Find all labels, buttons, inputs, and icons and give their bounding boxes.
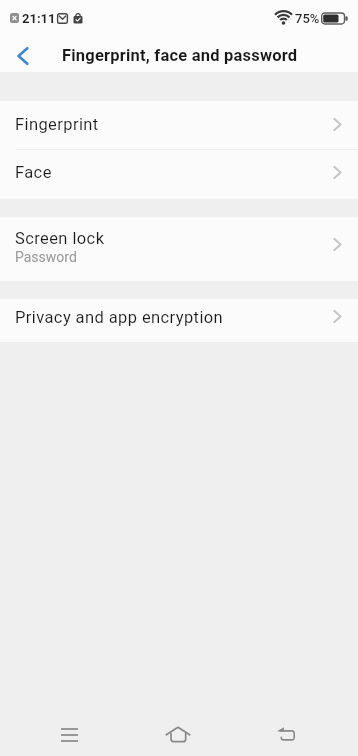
- staticText: 75%: [295, 11, 320, 26]
- button[interactable]: [45, 711, 93, 756]
- button[interactable]: [7, 40, 39, 72]
- staticText: Privacy and app encryption: [15, 308, 224, 327]
- button[interactable]: Privacy and app encryption: [0, 299, 358, 342]
- button[interactable]: Face: [0, 150, 358, 199]
- staticText: 21:11: [22, 11, 56, 26]
- staticText: Screen lock: [15, 229, 105, 248]
- staticText: Password: [15, 249, 77, 265]
- button[interactable]: Fingerprint: [0, 101, 358, 149]
- button[interactable]: [263, 711, 311, 756]
- button[interactable]: Screen lock: [0, 217, 358, 281]
- button[interactable]: [154, 711, 202, 756]
- staticText: Fingerprint, face and password: [62, 46, 298, 65]
- staticText: Fingerprint: [15, 115, 99, 134]
- staticText: Face: [15, 163, 52, 182]
